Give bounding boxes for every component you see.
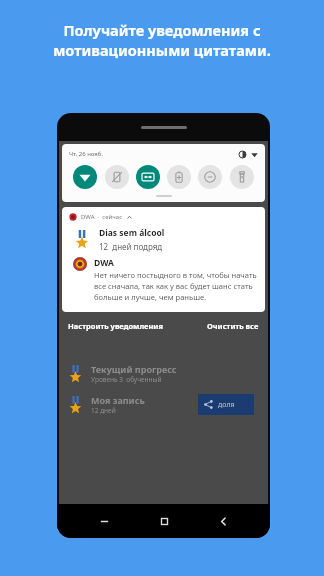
button[interactable]: Cast <box>136 165 160 189</box>
button[interactable]: Очистить все <box>205 319 261 333</box>
button[interactable]: Auto-rotate <box>105 165 129 189</box>
button[interactable]: DWA · сейчас <box>62 207 265 312</box>
staticText: Моя запись <box>91 394 145 406</box>
button[interactable]: доля <box>198 394 254 415</box>
staticText: Нет ничего постыдного в том, чтобы начат… <box>94 270 258 302</box>
button[interactable]: Настроить уведомления <box>66 319 165 333</box>
staticText: Получайте уведомления с мотивационными ц… <box>53 20 271 61</box>
staticText: Уровень 3 обученный <box>91 375 162 384</box>
button[interactable]: Flashlight <box>230 165 254 189</box>
staticText: Настроить уведомления <box>68 321 163 331</box>
button[interactable]: Do Not Disturb <box>198 165 222 189</box>
button[interactable]: Battery Saver <box>167 165 191 189</box>
staticText: доля <box>218 400 235 410</box>
staticText: Dias sem álcool <box>99 227 165 239</box>
staticText: DWA · сейчас <box>81 213 123 221</box>
button[interactable]: Back <box>210 508 236 534</box>
staticText: Очистить все <box>207 321 259 331</box>
staticText: DWA <box>94 257 114 269</box>
staticText: 12 дней <box>91 406 116 415</box>
staticText: Доброе утро, участник! <box>67 205 152 215</box>
staticText: 12 дней подряд <box>99 241 163 252</box>
button[interactable]: Home <box>151 508 177 534</box>
staticText: Чт, 26 нояб. <box>69 150 104 158</box>
staticText: Текущий прогресс <box>91 363 177 375</box>
button[interactable]: Minimize <box>91 508 117 534</box>
button[interactable]: Wi-Fi <box>73 165 97 189</box>
